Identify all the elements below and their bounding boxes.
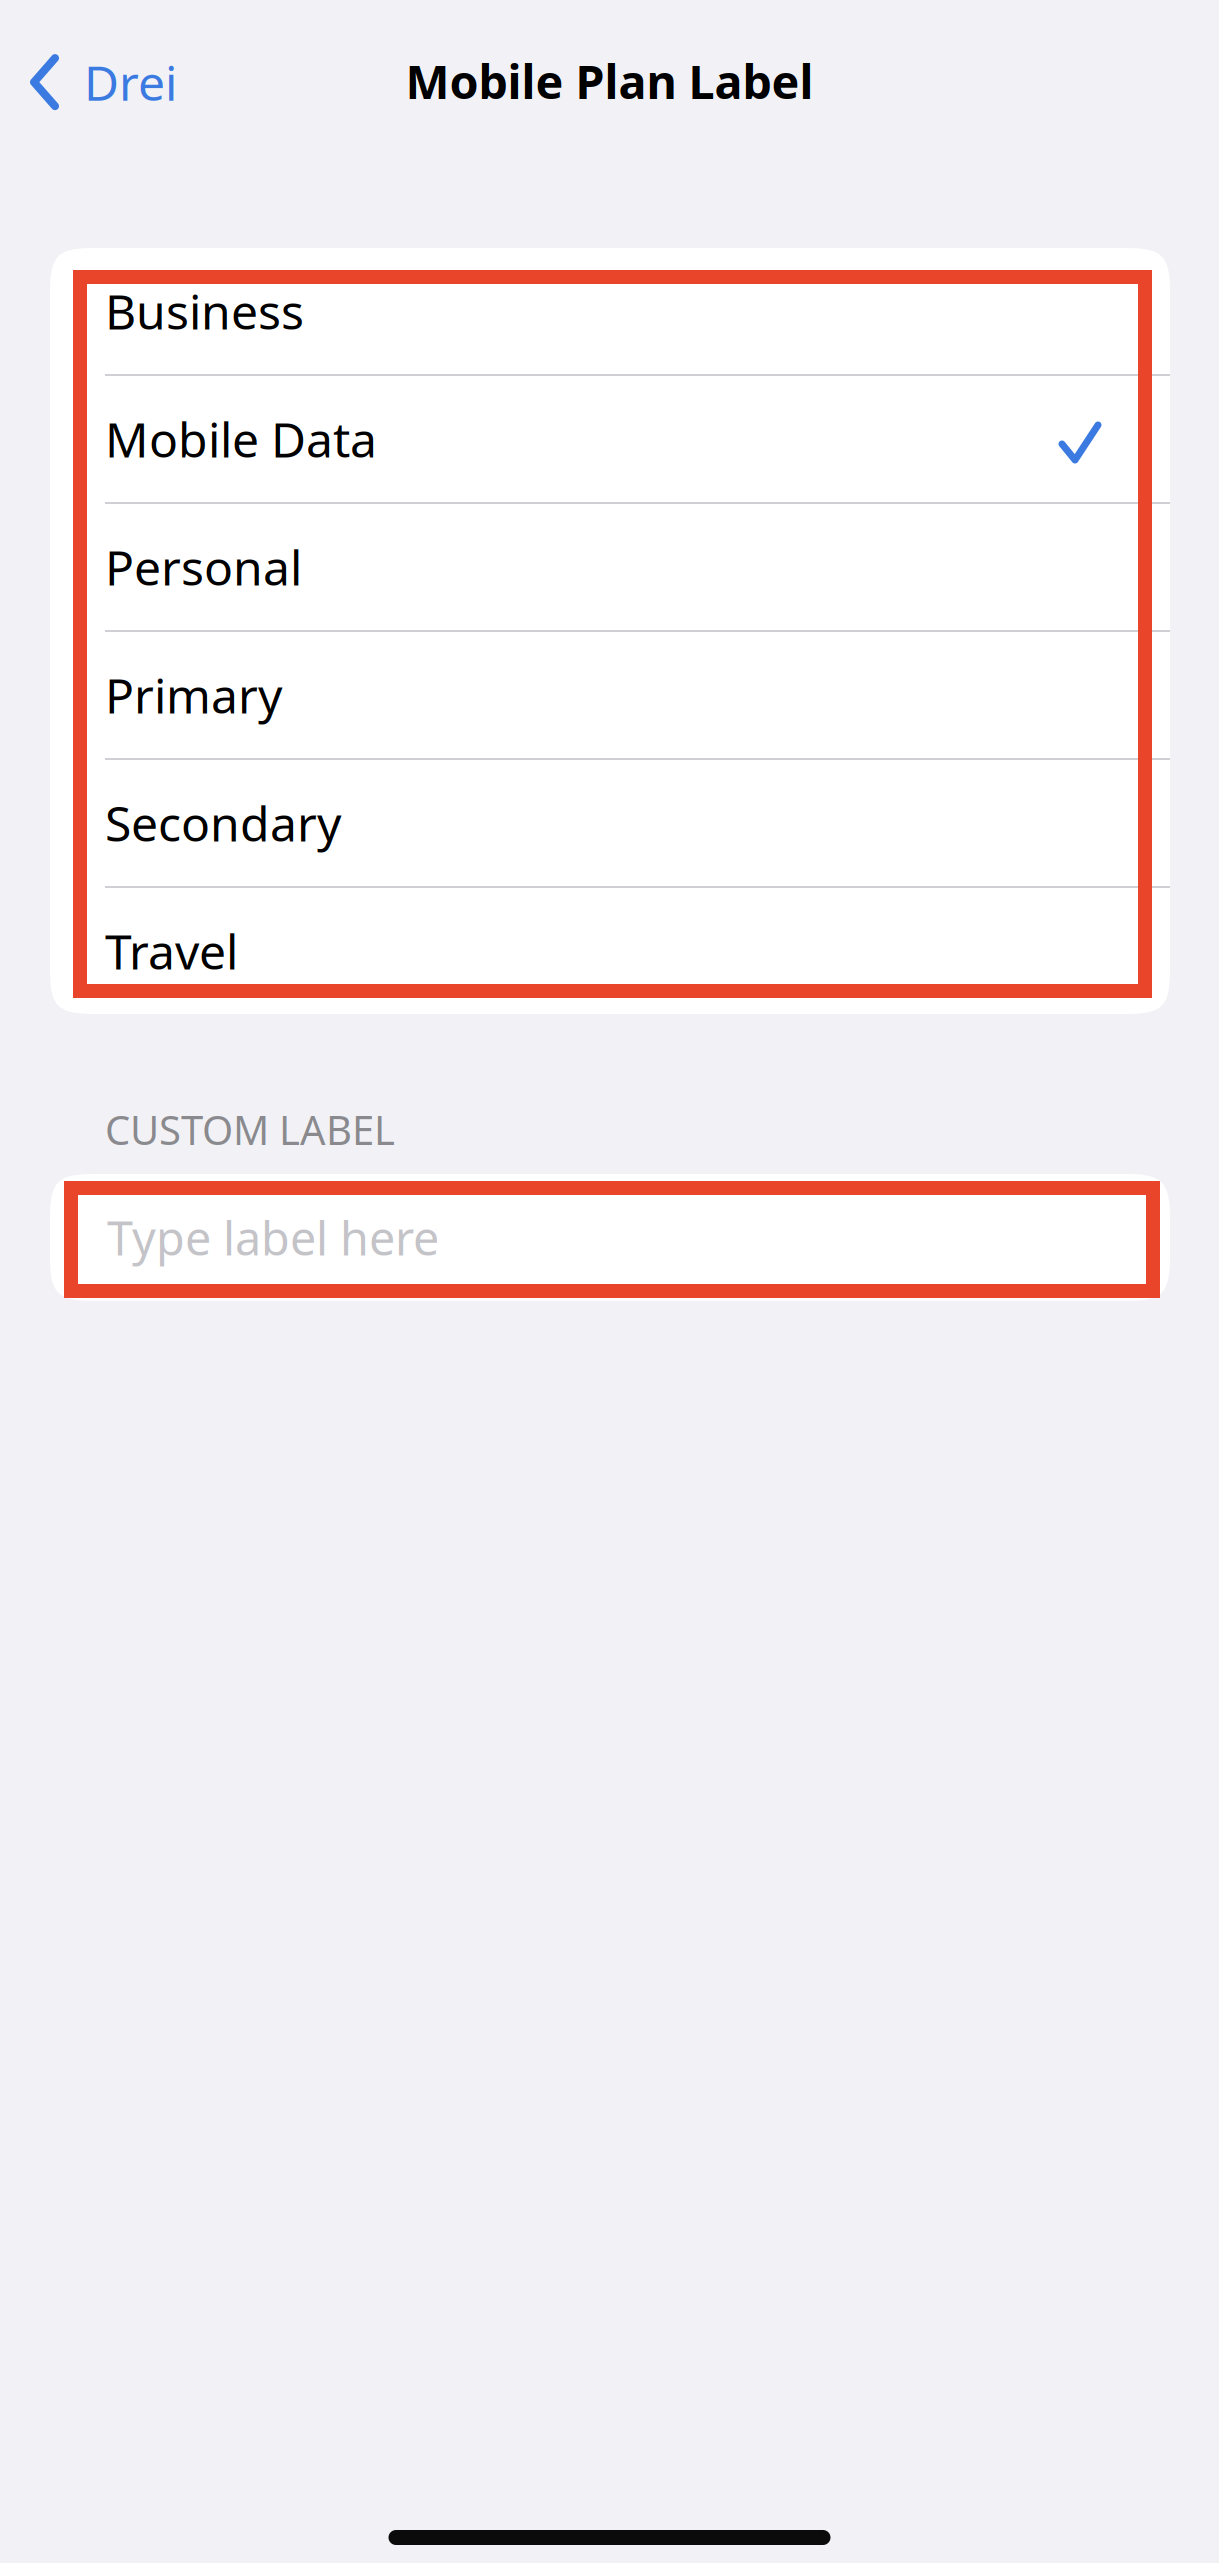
button[interactable]: Mobile Data (50, 376, 1170, 502)
staticText: Secondary (105, 791, 341, 855)
button[interactable]: Secondary (50, 760, 1170, 886)
staticText: Primary (105, 663, 282, 727)
button[interactable]: Primary (50, 632, 1170, 758)
staticText: Type label here (107, 1206, 439, 1268)
button[interactable]: Travel (50, 888, 1170, 1014)
staticText: Mobile Data (105, 407, 377, 471)
staticText: Mobile Plan Label (405, 50, 813, 112)
button[interactable]: Type label here (50, 1174, 1170, 1301)
staticText: Business (105, 279, 304, 343)
button[interactable]: Business (50, 248, 1170, 374)
button[interactable]: Back to Drei (0, 0, 201, 114)
button[interactable]: Personal (50, 504, 1170, 630)
staticText: Travel (105, 919, 238, 983)
staticText: CUSTOM LABEL (105, 1103, 395, 1156)
staticText: Drei (84, 50, 177, 114)
staticText: Personal (105, 535, 302, 599)
